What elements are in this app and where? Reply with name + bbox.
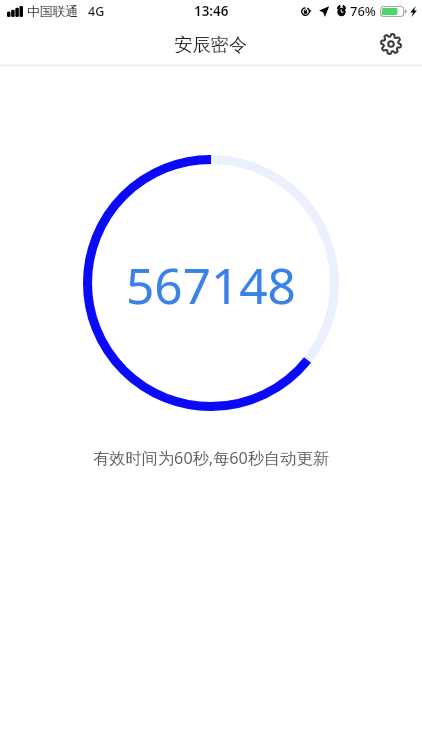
staticText: 安辰密令 — [174, 33, 248, 56]
button[interactable]: Settings — [375, 28, 407, 60]
staticText: 13:46 — [194, 2, 229, 20]
staticText: 有效时间为60秒,每60秒自动更新 — [93, 447, 329, 469]
staticText: 中国联通 — [27, 4, 79, 20]
staticText: 567148 — [126, 251, 296, 318]
button[interactable]: 567148 — [83, 155, 339, 411]
staticText: 76% — [350, 2, 376, 20]
staticText: 4G — [88, 3, 105, 20]
